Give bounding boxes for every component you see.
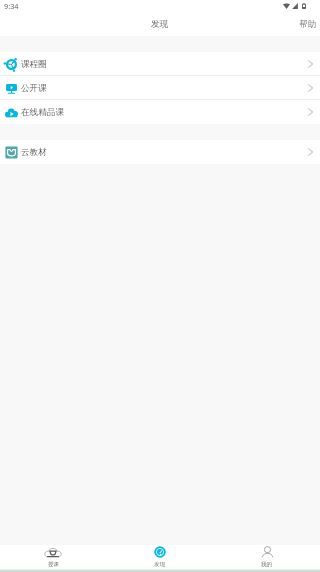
button[interactable]: 课程圈 [0, 52, 320, 76]
button[interactable]: 云教材 [0, 140, 320, 164]
button[interactable]: 发现 [106, 545, 213, 569]
staticText: 帮助 [299, 19, 317, 30]
staticText: 云教材 [21, 147, 47, 158]
staticText: 我的 [261, 561, 272, 568]
staticText: 授课 [48, 561, 59, 568]
staticText: 发现 [151, 19, 169, 30]
button[interactable]: 我的 [213, 545, 320, 569]
button[interactable]: 授课 [0, 545, 106, 569]
staticText: 公开课 [21, 83, 47, 94]
button[interactable]: 在线精品课 [0, 100, 320, 124]
staticText: 在线精品课 [21, 107, 64, 118]
button[interactable]: 帮助 [296, 21, 320, 32]
staticText: 课程圈 [21, 59, 47, 70]
staticText: 发现 [154, 561, 165, 568]
button[interactable]: 公开课 [0, 76, 320, 100]
staticText: 9:34 [4, 1, 19, 11]
